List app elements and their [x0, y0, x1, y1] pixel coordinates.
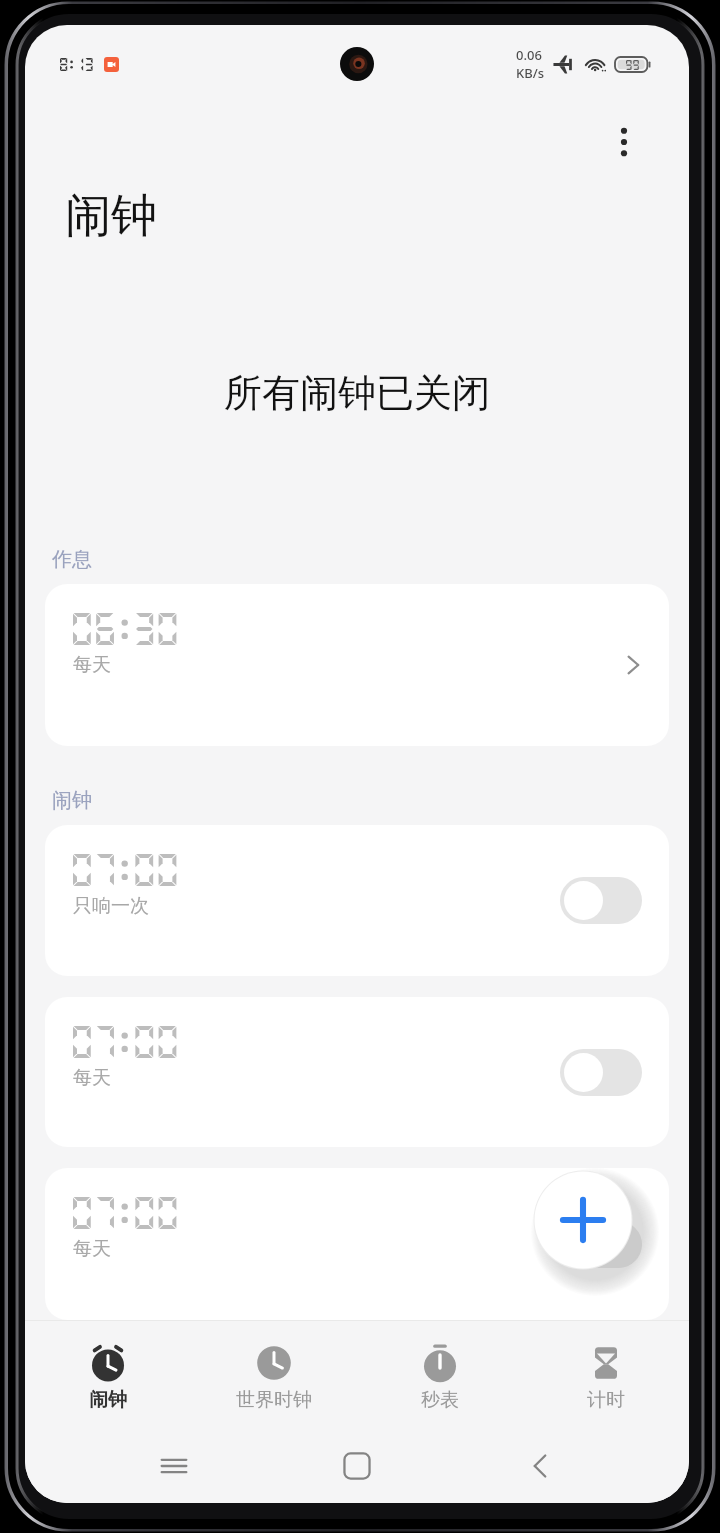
- staticText: 每天: [73, 653, 111, 677]
- staticText: 所有闹钟已关闭: [25, 369, 689, 417]
- button[interactable]: Toggle alarm: [560, 877, 642, 924]
- staticText: 作息: [52, 547, 92, 572]
- button[interactable]: 计时: [523, 1321, 689, 1432]
- staticText: 闹钟: [65, 187, 157, 245]
- button[interactable]: 每天: [45, 584, 669, 746]
- button[interactable]: Recent apps: [152, 1444, 196, 1488]
- button[interactable]: 秒表: [357, 1321, 523, 1432]
- staticText: 计时: [587, 1388, 625, 1412]
- staticText: 闹钟: [89, 1388, 127, 1412]
- staticText: 每天: [73, 1066, 111, 1090]
- button[interactable]: Toggle alarm: [560, 1221, 642, 1268]
- staticText: 秒表: [421, 1388, 459, 1412]
- button[interactable]: 世界时钟: [191, 1321, 357, 1432]
- button[interactable]: 只响一次: [45, 825, 669, 976]
- staticText: 只响一次: [73, 894, 149, 918]
- button[interactable]: Add alarm: [534, 1171, 632, 1269]
- button[interactable]: 每天: [45, 997, 669, 1147]
- staticText: 闹钟: [52, 788, 92, 813]
- button[interactable]: Back: [518, 1444, 562, 1488]
- button[interactable]: More options: [601, 117, 651, 167]
- staticText: 世界时钟: [236, 1388, 312, 1412]
- staticText: 每天: [73, 1237, 111, 1261]
- button[interactable]: Toggle alarm: [560, 1049, 642, 1096]
- button[interactable]: 闹钟: [25, 1321, 191, 1432]
- button[interactable]: 每天: [45, 1168, 669, 1320]
- button[interactable]: Home: [335, 1444, 379, 1488]
- staticText: KB/s: [516, 64, 545, 82]
- staticText: 0.06: [516, 46, 542, 64]
